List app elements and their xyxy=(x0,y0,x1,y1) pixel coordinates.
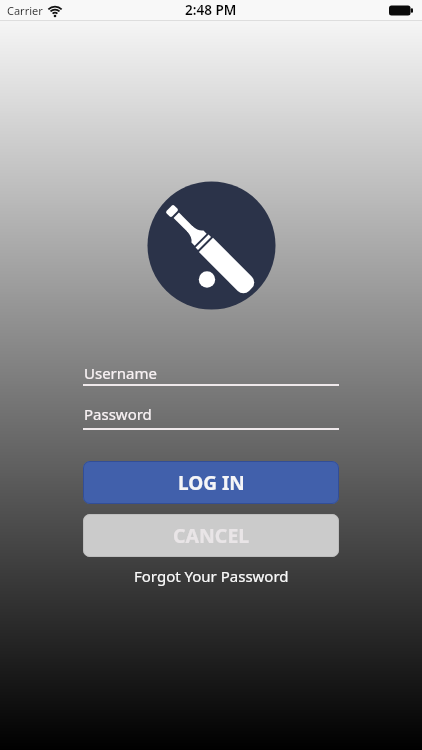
button[interactable]: Forgot Your Password xyxy=(134,566,289,586)
staticText: 2:48 PM xyxy=(185,1,237,19)
staticText: Username xyxy=(84,363,157,383)
staticText: CANCEL xyxy=(173,522,250,549)
staticText: Carrier xyxy=(7,3,43,18)
staticText: LOG IN xyxy=(178,470,245,496)
button[interactable]: LOG IN xyxy=(83,461,339,504)
button[interactable]: CANCEL xyxy=(83,514,339,557)
staticText: Password xyxy=(84,404,152,424)
